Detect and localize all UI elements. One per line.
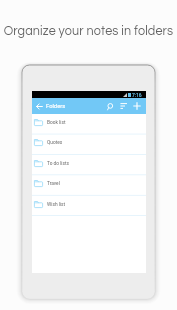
button[interactable]: Wish list [32, 196, 146, 216]
button[interactable]: Travel [32, 175, 146, 195]
staticText: To do lists [47, 161, 70, 167]
button[interactable]: Sort [117, 98, 130, 114]
staticText: Quotes [47, 140, 63, 146]
button[interactable]: Back [32, 98, 46, 114]
button[interactable]: To do lists [32, 155, 146, 175]
staticText: Organize your notes in folders [0, 25, 177, 38]
staticText: Wish list [47, 202, 66, 208]
button[interactable]: Add folder [130, 98, 143, 114]
staticText: Travel [47, 181, 60, 187]
staticText: Folders [46, 103, 66, 110]
button[interactable]: Quotes [32, 134, 146, 154]
button[interactable]: Book list [32, 114, 146, 134]
staticText: Book list [47, 120, 66, 126]
button[interactable]: Search [104, 98, 117, 114]
staticText: 7:16 [132, 92, 142, 98]
